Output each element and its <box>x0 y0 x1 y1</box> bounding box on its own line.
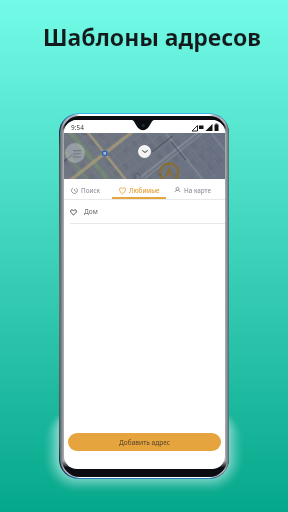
button[interactable]: Добавить адрес <box>68 433 221 451</box>
staticText: Добавить адрес <box>119 438 171 447</box>
staticText: 9:54 <box>71 123 84 132</box>
button[interactable]: Collapse map <box>138 145 151 158</box>
staticText: Любимые <box>129 186 160 195</box>
button[interactable]: Поиск <box>64 179 112 200</box>
staticText: Поиск <box>81 186 100 195</box>
button[interactable]: На карте <box>166 179 220 200</box>
button[interactable]: Любимые <box>112 179 166 200</box>
staticText: Дом <box>84 207 98 216</box>
staticText: На карте <box>184 186 212 195</box>
button[interactable]: Дом <box>64 200 225 223</box>
staticText: Шаблоны адресов <box>8 21 288 52</box>
button[interactable]: Menu <box>65 143 85 163</box>
